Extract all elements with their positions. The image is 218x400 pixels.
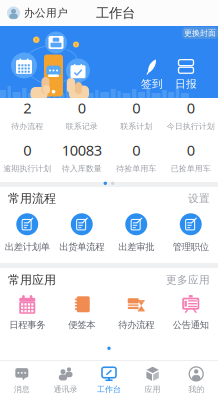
staticText: 出货单流程 (59, 241, 104, 253)
button[interactable]: 出差审批 (109, 210, 163, 255)
staticText: 0 (187, 140, 195, 160)
staticText: 我的 (188, 384, 204, 394)
staticText: 工作台 (96, 5, 135, 21)
button[interactable]: 日程事务 (0, 292, 54, 334)
staticText: 待捡单用车 (116, 164, 156, 174)
staticText: 设置 (188, 192, 210, 205)
staticText: 应用 (145, 384, 161, 394)
staticText: 公告通知 (173, 319, 209, 331)
staticText: 0 (187, 98, 195, 117)
button[interactable]: 便签本 (54, 292, 109, 334)
staticText: 工作台 (97, 384, 121, 394)
staticText: 2 (23, 98, 31, 117)
button[interactable]: 工作台 (87, 360, 131, 400)
button[interactable]: 更多应用 (166, 273, 210, 286)
staticText: 今日执行计划 (167, 121, 215, 131)
staticText: 管理职位 (173, 241, 209, 253)
staticText: 出差审批 (118, 241, 154, 253)
staticText: 待办流程 (11, 121, 43, 131)
staticText: 消息 (14, 384, 30, 394)
button[interactable]: 待办流程 (109, 292, 163, 334)
staticText: 逾期执行计划 (3, 164, 51, 174)
staticText: 签到 (141, 77, 163, 90)
staticText: 待办流程 (118, 319, 154, 331)
staticText: 0 (23, 140, 31, 160)
staticText: 0 (78, 98, 86, 117)
button[interactable]: 出货单流程 (54, 210, 109, 255)
button[interactable]: 管理职位 (163, 210, 218, 255)
staticText: 日程事务 (9, 319, 45, 331)
button[interactable]: 日报 (169, 58, 203, 90)
staticText: 常用应用 (8, 273, 56, 287)
staticText: 办公用户 (24, 6, 68, 19)
staticText: 日报 (175, 77, 197, 90)
staticText: 已捡单用车 (171, 164, 211, 174)
button[interactable]: 应用 (131, 360, 174, 400)
staticText: 常用流程 (8, 191, 56, 206)
button[interactable]: 通讯录 (44, 360, 87, 400)
button[interactable]: 签到 (135, 58, 169, 90)
staticText: 0 (132, 140, 140, 160)
button[interactable]: 消息 (0, 360, 44, 400)
staticText: 出差计划单 (5, 241, 50, 253)
button[interactable]: 更换封面 (182, 27, 218, 39)
button[interactable]: 我的 (174, 360, 218, 400)
button[interactable]: 办公用户 (0, 6, 68, 19)
staticText: 联系记录 (66, 121, 98, 131)
staticText: 10083 (62, 140, 102, 160)
staticText: 便签本 (68, 319, 95, 331)
staticText: 待入库数量 (62, 164, 102, 174)
staticText: 0 (132, 98, 140, 117)
button[interactable]: 出差计划单 (0, 210, 54, 255)
button[interactable]: 公告通知 (163, 292, 218, 334)
staticText: 联系计划 (120, 121, 152, 131)
button[interactable]: 设置 (188, 192, 210, 205)
staticText: 更换封面 (184, 28, 216, 38)
staticText: 通讯录 (53, 384, 77, 394)
staticText: 更多应用 (166, 273, 210, 286)
